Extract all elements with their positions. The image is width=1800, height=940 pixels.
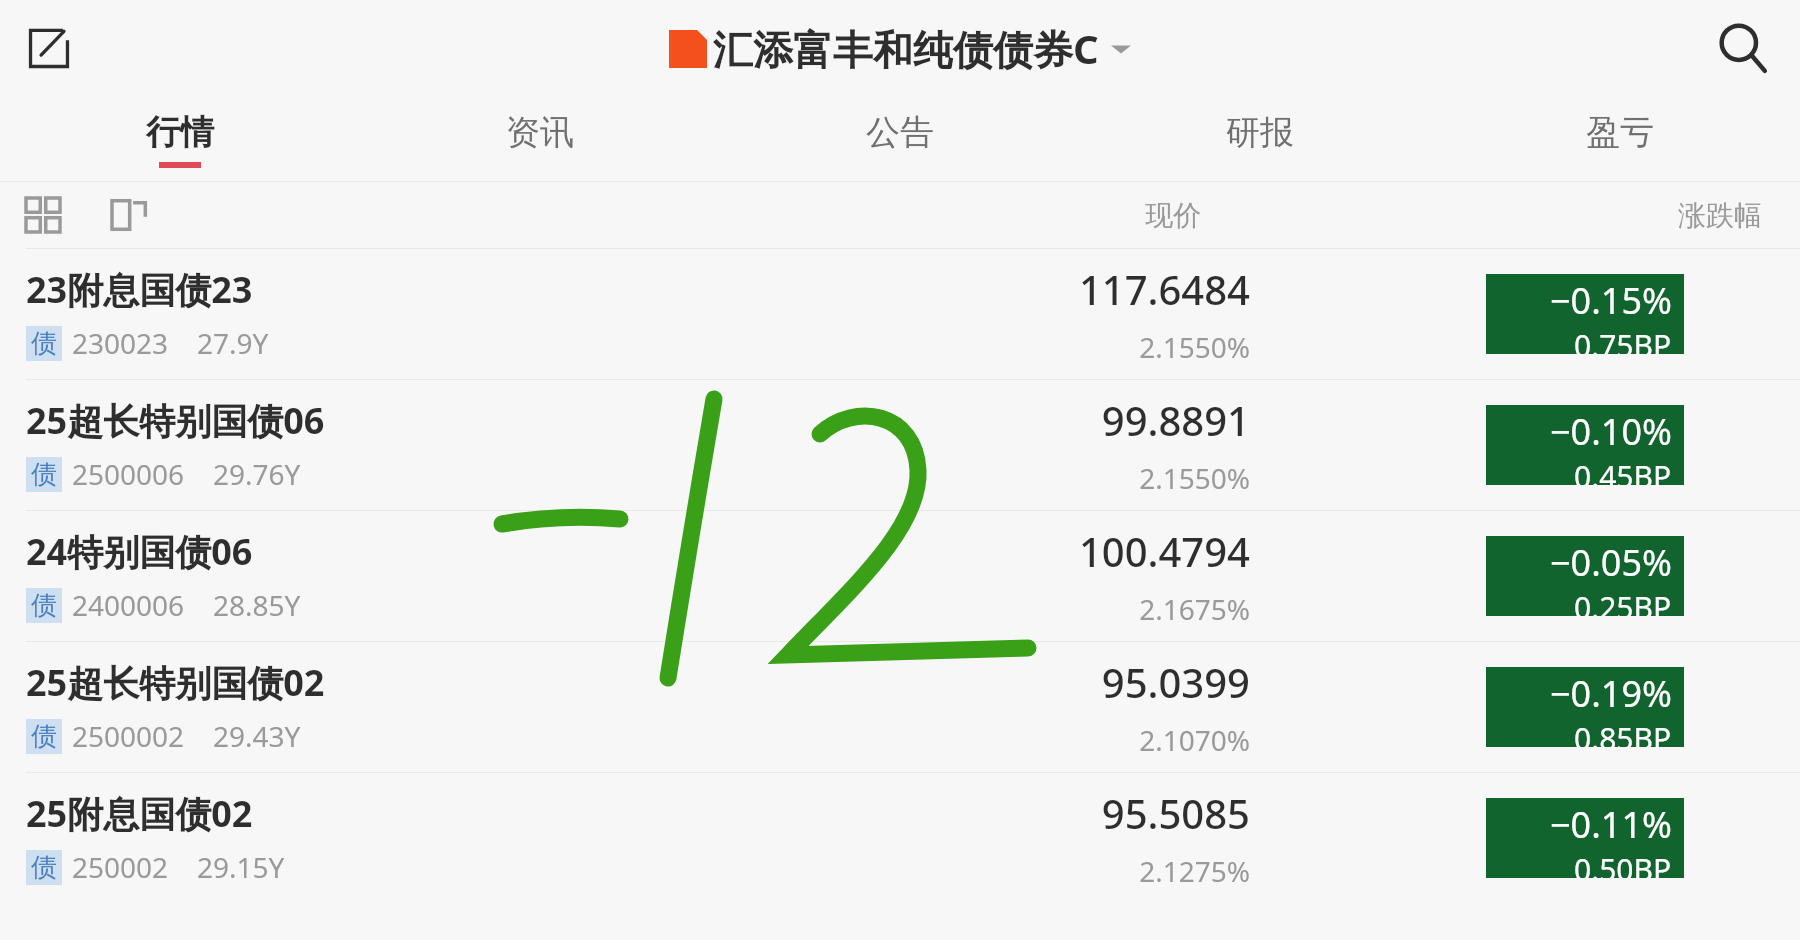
staticText: 现价 bbox=[1145, 198, 1201, 233]
staticText: 2.1675% bbox=[1139, 590, 1250, 628]
staticText: 230023 bbox=[72, 324, 169, 362]
staticText: 行情 bbox=[146, 111, 214, 154]
staticText: −0.11% bbox=[1550, 800, 1672, 849]
staticText: 25超长特别国债06 bbox=[26, 396, 325, 445]
staticText: 2400006 bbox=[72, 586, 185, 624]
staticText: 95.5085 bbox=[1101, 786, 1250, 840]
staticText: 25附息国债02 bbox=[26, 789, 253, 838]
staticText: 债 bbox=[31, 458, 57, 491]
button[interactable]: 研报 bbox=[1080, 96, 1440, 182]
staticText: 研报 bbox=[1226, 111, 1294, 154]
staticText: 117.6484 bbox=[1078, 262, 1250, 316]
button[interactable]: 23附息国债23 bbox=[0, 248, 1800, 379]
staticText: 0.75BP bbox=[1574, 325, 1672, 354]
staticText: 0.85BP bbox=[1574, 718, 1672, 747]
staticText: 债 bbox=[31, 851, 57, 884]
staticText: 99.8891 bbox=[1101, 393, 1250, 447]
staticText: 2500006 bbox=[72, 455, 185, 493]
staticText: 95.0399 bbox=[1101, 655, 1250, 709]
staticText: 2.1070% bbox=[1139, 721, 1250, 759]
staticText: 25超长特别国债02 bbox=[26, 658, 325, 707]
staticText: 债 bbox=[31, 589, 57, 622]
staticText: −0.15% bbox=[1550, 276, 1672, 325]
button[interactable]: 资讯 bbox=[360, 96, 720, 182]
staticText: 债 bbox=[31, 327, 57, 360]
button[interactable]: 行情 bbox=[0, 96, 360, 182]
staticText: 0.25BP bbox=[1574, 587, 1672, 616]
button[interactable]: 25超长特别国债06 bbox=[0, 379, 1800, 510]
staticText: 0.50BP bbox=[1574, 849, 1672, 878]
staticText: 资讯 bbox=[506, 111, 574, 154]
button[interactable]: Search bbox=[1706, 11, 1780, 85]
button[interactable]: Edit bbox=[16, 15, 82, 81]
button[interactable]: Sort bbox=[112, 198, 146, 232]
button[interactable]: 公告 bbox=[720, 96, 1080, 182]
staticText: 23附息国债23 bbox=[26, 265, 253, 314]
staticText: 2500002 bbox=[72, 717, 185, 755]
button[interactable]: 25附息国债02 bbox=[0, 772, 1800, 903]
staticText: 汇添富丰和纯债债券C bbox=[713, 21, 1099, 76]
staticText: 24特别国债06 bbox=[26, 527, 253, 576]
staticText: 0.45BP bbox=[1574, 456, 1672, 485]
staticText: 250002 bbox=[72, 848, 169, 886]
staticText: 涨跌幅 bbox=[1678, 198, 1762, 233]
button[interactable]: Grid view bbox=[26, 198, 60, 232]
staticText: −0.10% bbox=[1550, 407, 1672, 456]
staticText: 2.1550% bbox=[1139, 459, 1250, 497]
staticText: 2.1550% bbox=[1139, 328, 1250, 366]
staticText: 2.1275% bbox=[1139, 852, 1250, 890]
staticText: −0.05% bbox=[1550, 538, 1672, 587]
staticText: 27.9Y bbox=[197, 324, 269, 362]
staticText: 公告 bbox=[866, 111, 934, 154]
staticText: 29.76Y bbox=[213, 455, 301, 493]
staticText: 29.15Y bbox=[197, 848, 285, 886]
button[interactable]: 24特别国债06 bbox=[0, 510, 1800, 641]
staticText: 100.4794 bbox=[1078, 524, 1250, 578]
staticText: 29.43Y bbox=[213, 717, 301, 755]
button[interactable]: 盈亏 bbox=[1440, 96, 1800, 182]
staticText: −0.19% bbox=[1550, 669, 1672, 718]
button[interactable]: 25超长特别国债02 bbox=[0, 641, 1800, 772]
staticText: 债 bbox=[31, 720, 57, 753]
staticText: 28.85Y bbox=[213, 586, 301, 624]
staticText: 盈亏 bbox=[1586, 111, 1654, 154]
